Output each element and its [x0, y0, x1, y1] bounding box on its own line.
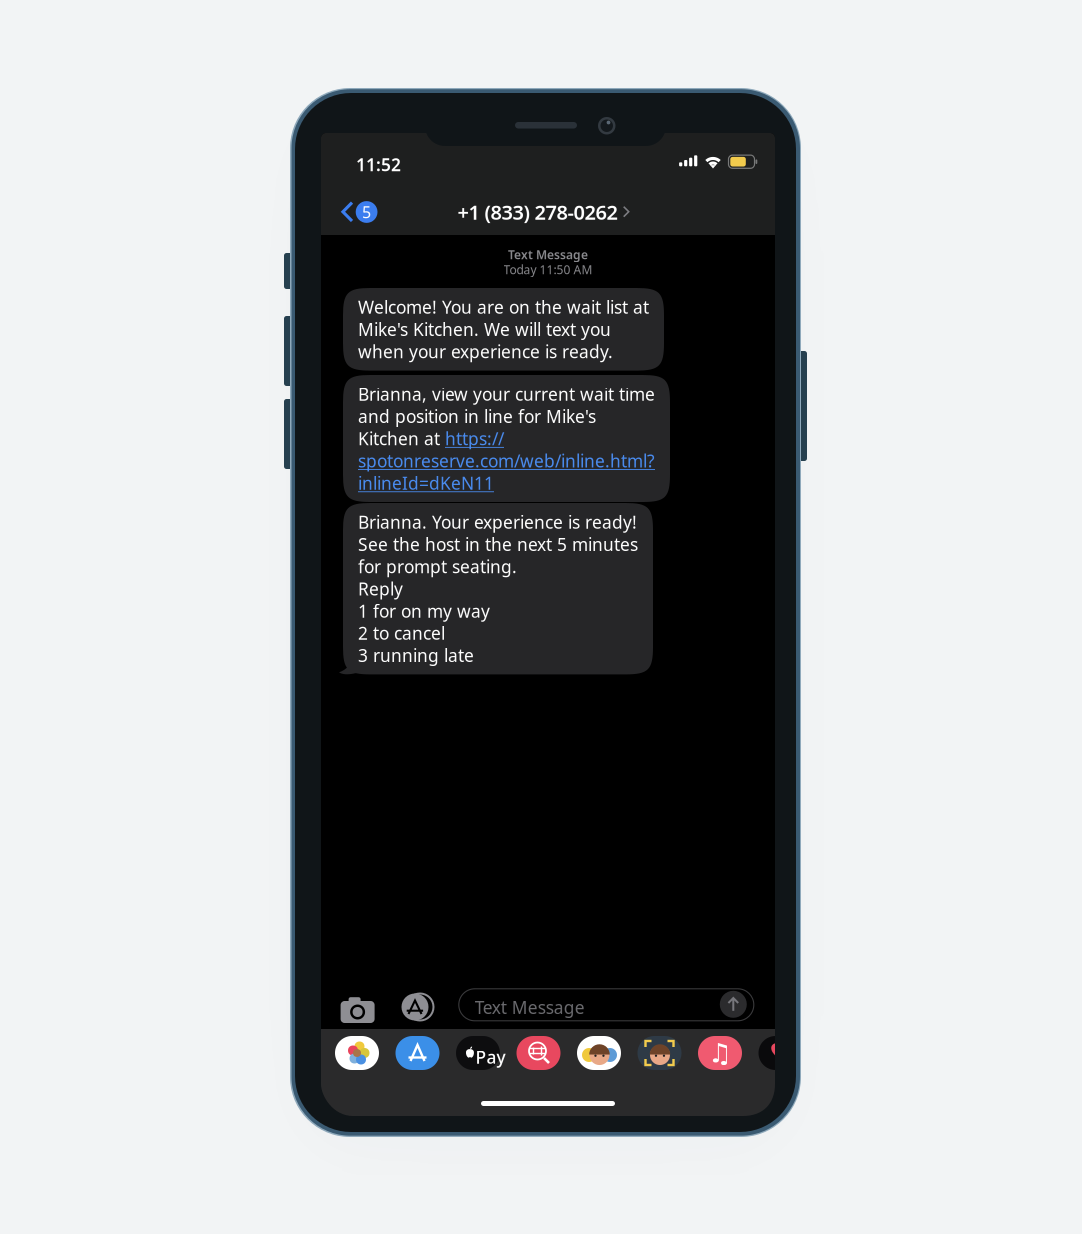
button[interactable]: Memoji — [637, 1036, 681, 1070]
button[interactable]: Apple Pay — [456, 1036, 500, 1070]
button[interactable]: Memoji stickers — [577, 1036, 621, 1070]
button[interactable]: 5 — [321, 189, 391, 235]
staticText: Brianna, view your current wait time — [358, 383, 655, 406]
staticText: Mike's Kitchen. We will text you — [358, 318, 611, 341]
staticText: +1 (833) 278-0262 — [457, 199, 617, 225]
staticText: ♫ — [708, 1038, 732, 1068]
staticText: Welcome! You are on the wait list at — [358, 296, 649, 319]
staticText: See the host in the next 5 minutes — [358, 533, 638, 556]
staticText: Pay — [475, 1045, 505, 1068]
staticText: 5 — [362, 201, 371, 223]
staticText: 3 running late — [358, 644, 474, 667]
staticText: Text Message — [475, 996, 585, 1019]
staticText: ♥ — [769, 1039, 792, 1067]
staticText: inlineId=dKeN11 — [358, 471, 494, 494]
staticText: https:// — [445, 427, 504, 450]
button[interactable]: iMessage apps — [398, 990, 438, 1024]
staticText: 2 to cancel — [358, 622, 445, 645]
button[interactable]: Photos — [335, 1036, 379, 1070]
staticText: Text Message — [508, 246, 588, 262]
staticText: 11:52 — [356, 153, 401, 176]
staticText: when your experience is ready. — [358, 340, 613, 363]
staticText: Today 11:50 AM — [503, 261, 592, 277]
button[interactable]: Images — [516, 1036, 560, 1070]
staticText: Kitchen at — [358, 427, 445, 450]
staticText: Reply — [358, 577, 403, 600]
button[interactable]: +1 (833) 278-0262 — [444, 189, 644, 235]
button[interactable]: Text Message field — [459, 989, 754, 1021]
staticText: for prompt seating. — [358, 555, 517, 578]
staticText: and position in line for Mike's — [358, 405, 596, 428]
staticText: 1 for on my way — [358, 599, 490, 622]
staticText: Brianna. Your experience is ready! — [358, 511, 637, 534]
staticText: spotonreserve.com/web/inline.html? — [358, 449, 655, 472]
button[interactable]: Music — [698, 1036, 742, 1070]
button[interactable]: Digital Touch — [758, 1036, 802, 1070]
button[interactable]: Take photo — [341, 990, 381, 1024]
button[interactable]: App Store — [395, 1036, 439, 1070]
